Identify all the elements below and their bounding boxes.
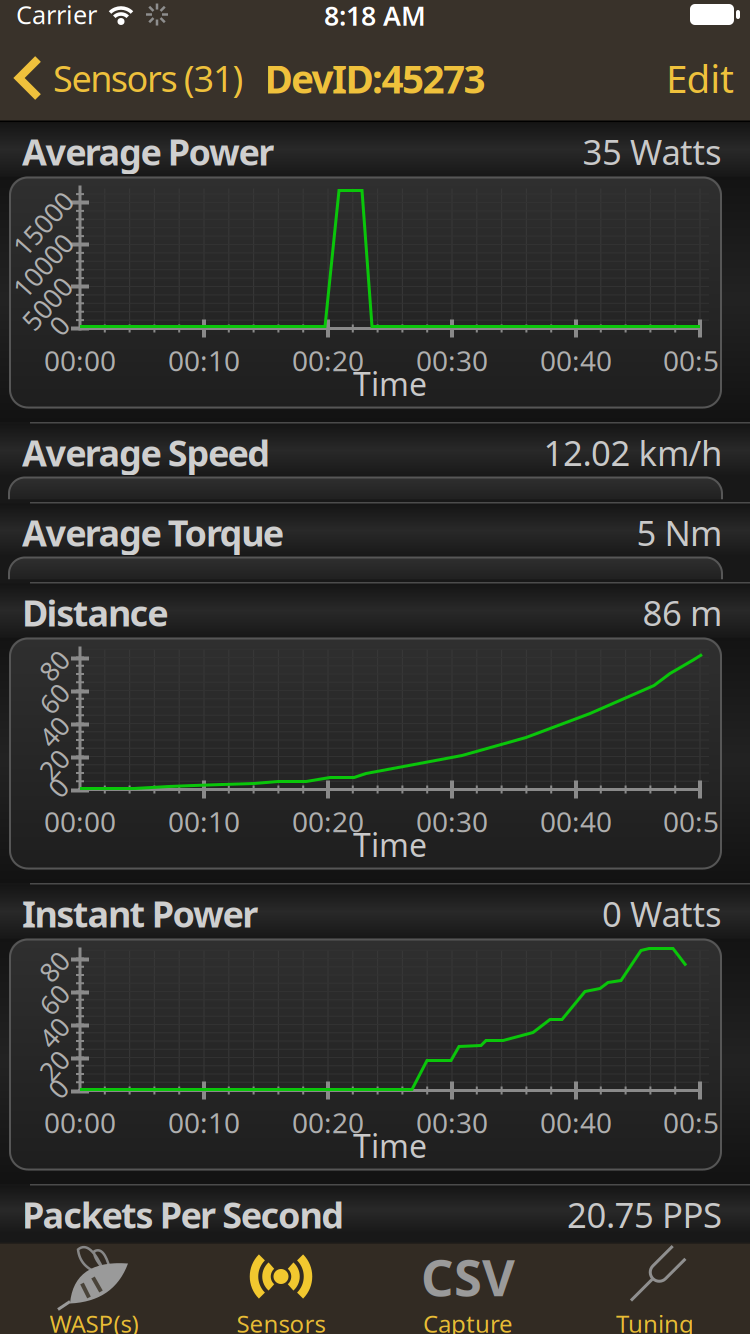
staticText: 00:00 bbox=[44, 1104, 116, 1141]
staticText: Edit bbox=[666, 52, 734, 104]
button[interactable]: Sensors bbox=[188, 1242, 375, 1334]
staticText: 00:10 bbox=[168, 803, 240, 840]
staticText: Distance bbox=[22, 589, 168, 636]
button[interactable]: Edit bbox=[666, 52, 750, 104]
staticText: 20 bbox=[39, 1048, 69, 1083]
staticText: 00:00 bbox=[44, 342, 116, 379]
staticText: 00:20 bbox=[292, 803, 364, 840]
staticText: 12.02 km/h bbox=[543, 429, 722, 475]
staticText: 60 bbox=[39, 681, 69, 716]
staticText: Tuning bbox=[616, 1308, 694, 1334]
button[interactable]: Instant Power bbox=[0, 884, 750, 938]
staticText: 5 Nm bbox=[636, 509, 722, 555]
staticText: 00:5 bbox=[663, 342, 719, 379]
staticText: Time bbox=[353, 823, 427, 866]
staticText: 40 bbox=[39, 1015, 69, 1050]
staticText: WASP(s) bbox=[49, 1308, 138, 1334]
staticText: Packets Per Second bbox=[22, 1191, 344, 1238]
staticText: Time bbox=[353, 362, 427, 405]
staticText: 00:00 bbox=[44, 803, 116, 840]
staticText: 80 bbox=[39, 648, 69, 683]
staticText: 0 Watts bbox=[602, 890, 722, 936]
button[interactable]: Sensors (31) bbox=[0, 34, 244, 121]
staticText: 35 Watts bbox=[582, 128, 722, 174]
staticText: 20.75 PPS bbox=[567, 1191, 722, 1237]
button[interactable]: Average Power bbox=[0, 122, 750, 176]
staticText: 0 bbox=[51, 308, 66, 343]
staticText: 80 bbox=[39, 949, 69, 984]
staticText: Instant Power bbox=[22, 890, 258, 937]
staticText: DevID:45273 bbox=[264, 53, 485, 104]
button[interactable]: CSV bbox=[375, 1242, 562, 1334]
staticText: 00:30 bbox=[416, 803, 488, 840]
staticText: 00:10 bbox=[168, 1104, 240, 1141]
button[interactable]: Average Torque bbox=[0, 503, 750, 557]
staticText: 10000 bbox=[5, 248, 80, 283]
button[interactable]: Tuning bbox=[562, 1242, 749, 1334]
staticText: 86 m bbox=[642, 589, 722, 635]
staticText: 15000 bbox=[5, 206, 80, 241]
staticText: CSV bbox=[421, 1243, 515, 1310]
staticText: Average Torque bbox=[22, 509, 284, 556]
staticText: 0 bbox=[50, 1071, 65, 1106]
staticText: 00:30 bbox=[416, 342, 488, 379]
button[interactable]: WASP(s) bbox=[1, 1242, 188, 1334]
staticText: Average Speed bbox=[22, 429, 270, 476]
staticText: Average Power bbox=[22, 128, 274, 175]
staticText: 40 bbox=[39, 714, 69, 749]
staticText: Sensors (31) bbox=[53, 54, 244, 102]
staticText: Sensors bbox=[236, 1308, 325, 1334]
staticText: 00:40 bbox=[540, 803, 612, 840]
button[interactable]: Average Speed bbox=[0, 423, 750, 477]
button[interactable]: Packets Per Second bbox=[0, 1185, 750, 1234]
staticText: 60 bbox=[39, 982, 69, 1017]
staticText: 20 bbox=[39, 747, 69, 782]
staticText: 00:40 bbox=[540, 1104, 612, 1141]
button[interactable]: Distance bbox=[0, 583, 750, 637]
staticText: Time bbox=[353, 1124, 427, 1167]
staticText: 00:30 bbox=[416, 1104, 488, 1141]
staticText: 8:18 AM bbox=[324, 0, 426, 33]
staticText: Carrier bbox=[16, 0, 97, 31]
staticText: 5000 bbox=[17, 286, 77, 321]
staticText: 00:20 bbox=[292, 1104, 364, 1141]
staticText: Capture bbox=[423, 1308, 513, 1334]
staticText: 00:5 bbox=[663, 1104, 719, 1141]
staticText: 00:40 bbox=[540, 342, 612, 379]
staticText: 0 bbox=[50, 770, 65, 805]
staticText: 00:10 bbox=[168, 342, 240, 379]
staticText: 00:20 bbox=[292, 342, 364, 379]
staticText: 00:5 bbox=[663, 803, 719, 840]
